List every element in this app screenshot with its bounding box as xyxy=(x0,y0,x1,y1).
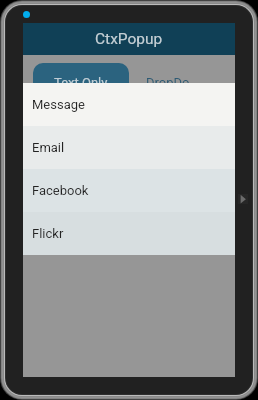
staticText: CtxPopup xyxy=(95,30,163,48)
staticText: Facebook xyxy=(32,183,89,198)
button[interactable]: Message xyxy=(23,83,235,126)
staticText: Message xyxy=(32,97,85,112)
button[interactable]: Next xyxy=(238,194,248,204)
staticText: Text Only xyxy=(54,75,108,90)
button[interactable]: Email xyxy=(23,126,235,169)
staticText: Flickr xyxy=(32,226,64,241)
button[interactable]: Text Only xyxy=(33,63,129,101)
button[interactable]: Facebook xyxy=(23,169,235,212)
staticText: Email xyxy=(32,140,65,155)
button[interactable]: Flickr xyxy=(23,212,235,255)
button[interactable]: DropDo xyxy=(123,63,213,101)
staticText: DropDo xyxy=(146,75,190,90)
